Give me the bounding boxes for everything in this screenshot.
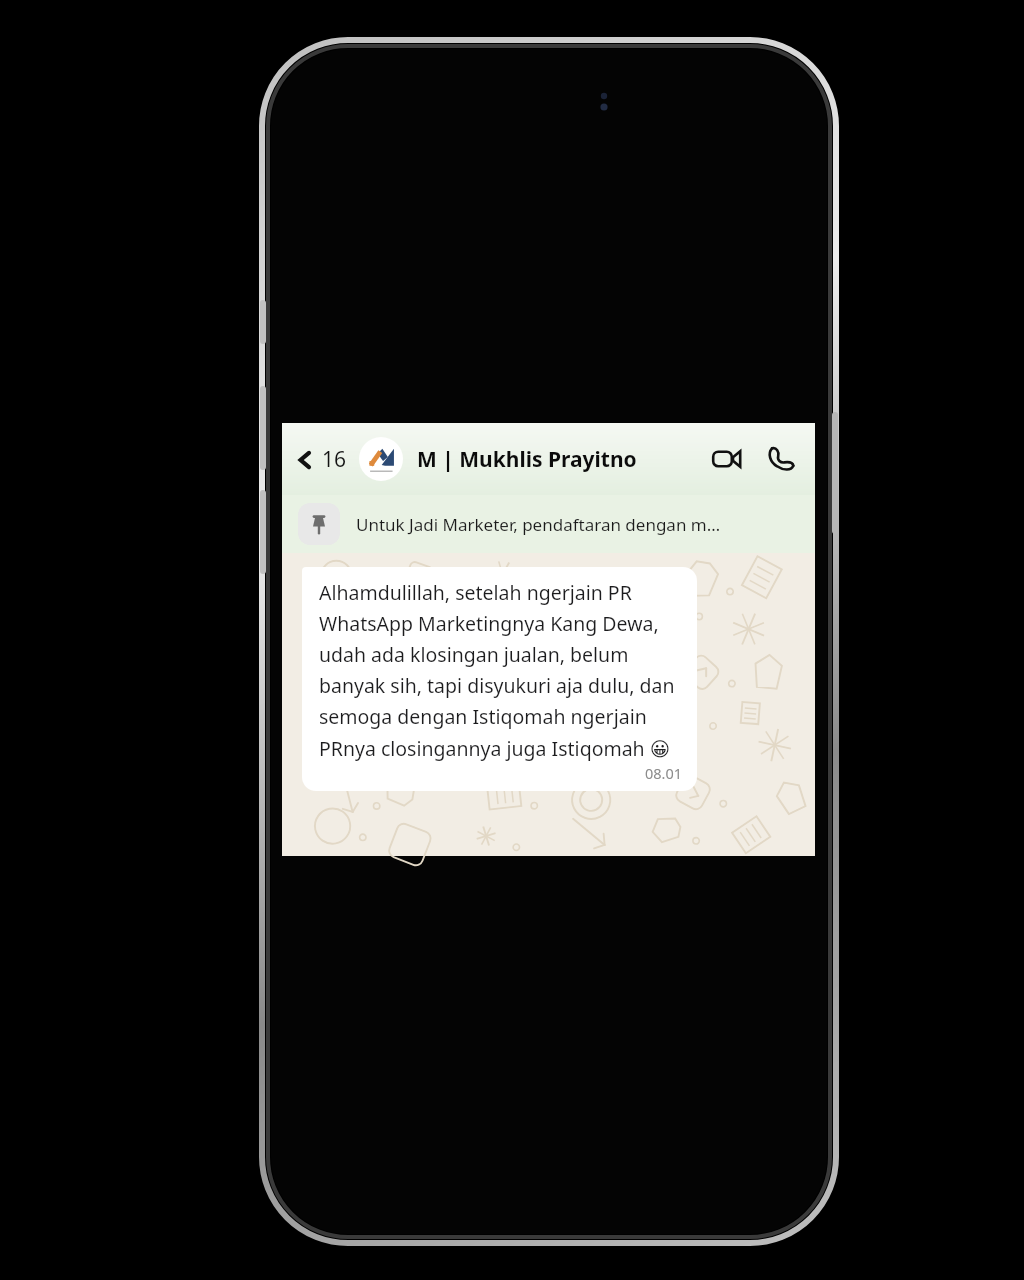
button[interactable]: Video call — [703, 435, 751, 483]
staticText: Alhamdulillah, setelah ngerjain PR Whats… — [319, 579, 683, 761]
button[interactable]: Untuk Jadi Marketer, pendaftaran dengan … — [282, 495, 815, 553]
staticText: 08.01 — [645, 763, 683, 783]
button[interactable]: M | Mukhlis Prayitno — [417, 445, 703, 474]
button[interactable]: Contact avatar — [359, 437, 403, 481]
staticText: Untuk Jadi Marketer, pendaftaran dengan … — [356, 513, 721, 536]
button[interactable]: Alhamdulillah, setelah ngerjain PR Whats… — [302, 567, 697, 791]
button[interactable]: Voice call — [759, 437, 803, 481]
button[interactable]: 16 — [294, 445, 353, 474]
staticText: 16 — [322, 445, 347, 474]
